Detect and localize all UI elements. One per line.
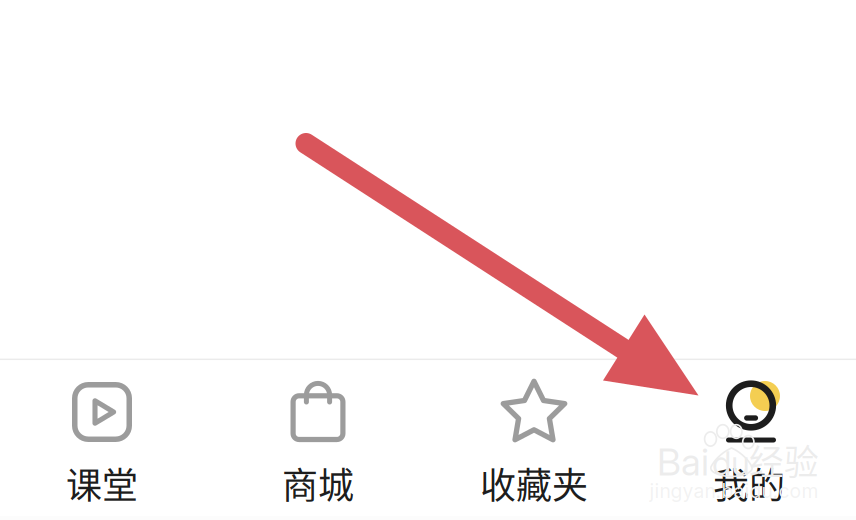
staticText: 我的 xyxy=(713,457,785,509)
staticText: Bai xyxy=(657,439,709,485)
staticText: jingyan.baidu.com xyxy=(649,479,818,503)
button[interactable]: 我的 xyxy=(642,360,856,520)
staticText: 经验 xyxy=(749,435,819,485)
button[interactable]: 课堂 xyxy=(0,360,214,520)
staticText: 收藏夹 xyxy=(480,457,588,509)
staticText: 商城 xyxy=(282,457,354,509)
button[interactable]: 商城 xyxy=(214,360,428,520)
staticText: 课堂 xyxy=(66,457,138,509)
button[interactable]: 收藏夹 xyxy=(428,360,642,520)
staticText: du xyxy=(712,443,750,483)
